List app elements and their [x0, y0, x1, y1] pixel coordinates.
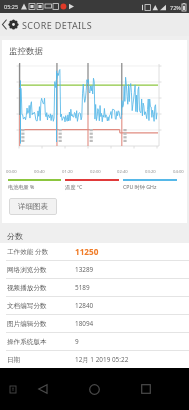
button[interactable]: 视频播放分数	[0, 279, 189, 297]
staticText: 04:00	[173, 169, 184, 175]
button[interactable]: Back	[0, 13, 8, 36]
staticText: 图片编辑分数	[7, 320, 65, 328]
staticText: 00:00	[6, 169, 17, 175]
button[interactable]: 操作系统版本	[0, 333, 189, 351]
staticText: 电池电量 %	[8, 183, 35, 190]
staticText: 03:20	[145, 169, 156, 175]
staticText: 温度 °C	[65, 183, 83, 190]
button[interactable]: 网络浏览分数	[0, 261, 189, 279]
staticText: 12840	[75, 301, 94, 310]
staticText: 日期	[7, 356, 65, 364]
staticText: 02:00	[90, 169, 101, 175]
staticText: 详细图表	[18, 202, 48, 211]
button[interactable]: Recent apps	[133, 376, 159, 402]
staticText: 18094	[75, 319, 94, 328]
staticText: 网络浏览分数	[7, 266, 65, 274]
staticText: 72%	[170, 4, 181, 11]
staticText: SCORE DETAILS	[22, 19, 93, 31]
button[interactable]: Switch keyboard	[7, 384, 18, 395]
staticText: 工作效能 分数	[7, 247, 65, 256]
button[interactable]: 详细图表	[9, 198, 57, 215]
staticText: 02:40	[117, 169, 128, 175]
staticText: 13289	[75, 265, 94, 274]
staticText: 监控数据	[9, 46, 43, 57]
staticText: 00:40	[34, 169, 45, 175]
staticText: 9	[75, 337, 79, 346]
staticText: 5189	[75, 283, 90, 292]
staticText: 05:25	[4, 3, 19, 10]
button[interactable]: 文档编写分数	[0, 297, 189, 315]
button[interactable]: Home	[81, 376, 107, 402]
staticText: 操作系统版本	[7, 338, 65, 346]
staticText: 11250	[75, 246, 99, 257]
staticText: 分数	[7, 231, 23, 241]
staticText: 视频播放分数	[7, 284, 65, 292]
staticText: 01:20	[62, 169, 73, 175]
button[interactable]: 图片编辑分数	[0, 315, 189, 333]
staticText: 12月 1 2019 05:22	[75, 355, 129, 364]
staticText: 文档编写分数	[7, 302, 65, 310]
button[interactable]: SCORE DETAILS	[8, 13, 93, 36]
staticText: CPU 时钟 GHz	[123, 183, 157, 190]
button[interactable]: Back	[29, 376, 55, 402]
button[interactable]: 日期	[0, 351, 189, 368]
button[interactable]: 工作效能 分数	[0, 243, 189, 261]
